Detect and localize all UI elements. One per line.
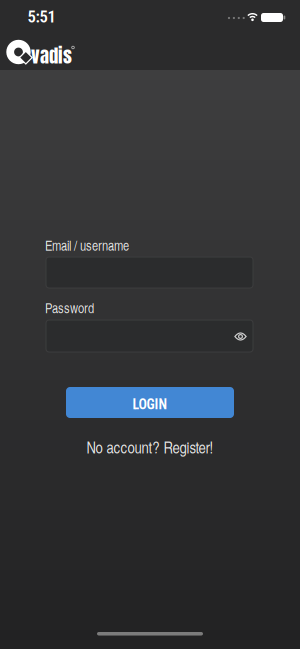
staticText: LOGIN — [132, 396, 167, 413]
staticText: Password — [45, 298, 94, 317]
staticText: 5:51 — [27, 7, 55, 26]
staticText: vadis — [31, 41, 72, 70]
button[interactable]: No account? Register! — [0, 436, 300, 458]
button[interactable]: LOGIN — [66, 387, 234, 418]
staticText: No account? Register! — [86, 436, 213, 458]
button[interactable] — [228, 326, 252, 346]
staticText: Email / username — [45, 236, 129, 255]
button[interactable] — [46, 320, 253, 352]
